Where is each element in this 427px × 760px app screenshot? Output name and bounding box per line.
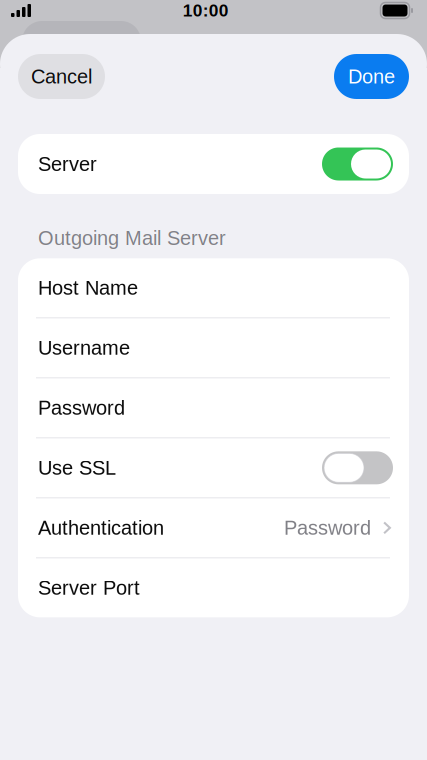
staticText: Username bbox=[38, 337, 130, 359]
button[interactable]: Authentication bbox=[18, 498, 409, 557]
staticText: Cancel bbox=[31, 65, 92, 88]
staticText: Password bbox=[38, 397, 125, 419]
staticText: Server bbox=[38, 153, 97, 175]
staticText: Done bbox=[348, 65, 395, 88]
button[interactable]: Done bbox=[334, 54, 409, 99]
staticText: Use SSL bbox=[38, 457, 116, 479]
button[interactable]: Server Port bbox=[18, 558, 409, 617]
button[interactable]: Cancel bbox=[18, 54, 105, 99]
staticText: Authentication bbox=[38, 517, 164, 539]
staticText: 10:00 bbox=[183, 1, 229, 20]
button[interactable]: Server bbox=[18, 134, 409, 194]
button[interactable]: Host Name bbox=[18, 258, 409, 317]
button[interactable]: Use SSL bbox=[18, 438, 409, 497]
button[interactable]: Username bbox=[18, 318, 409, 377]
button[interactable]: Password bbox=[18, 378, 409, 437]
staticText: Password bbox=[284, 517, 371, 539]
staticText: Host Name bbox=[38, 277, 138, 299]
staticText: Outgoing Mail Server bbox=[38, 227, 226, 249]
staticText: Server Port bbox=[38, 577, 140, 599]
